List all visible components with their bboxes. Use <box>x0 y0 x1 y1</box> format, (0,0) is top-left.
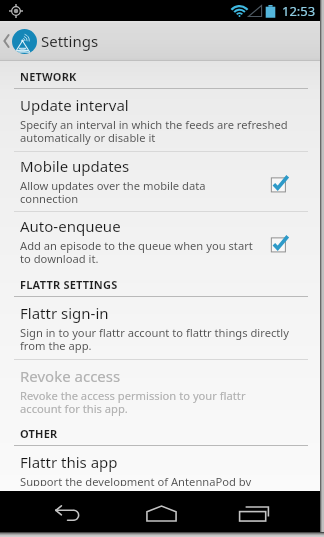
button[interactable]: Toggle setting <box>270 174 290 194</box>
staticText: Sign in to your flattr account to flattr… <box>20 325 289 354</box>
staticText: Flattr this app <box>20 452 118 472</box>
staticText: Add an episode to the queue when you sta… <box>20 238 253 267</box>
button[interactable]: Back <box>39 491 95 532</box>
staticText: Allow updates over the mobile data conne… <box>20 178 206 207</box>
staticText: Auto-enqueue <box>20 216 121 236</box>
staticText: Specify an interval in which the feeds a… <box>20 117 288 146</box>
button[interactable]: Home <box>133 491 189 532</box>
staticText: Revoke access <box>20 366 121 386</box>
staticText: Revoke the access permission to your fla… <box>20 388 246 417</box>
staticText: Support the development of AntennaPod by… <box>20 474 252 486</box>
button[interactable]: Update interval <box>0 89 320 151</box>
staticText: NETWORK <box>20 69 77 84</box>
button[interactable]: Recent apps <box>226 491 282 532</box>
button[interactable]: Mobile updates <box>0 152 320 211</box>
button[interactable]: Navigate up <box>0 21 12 61</box>
staticText: Settings <box>41 31 99 51</box>
button[interactable]: Toggle setting <box>270 234 290 254</box>
button[interactable]: Revoke access <box>0 360 320 422</box>
button[interactable]: Flattr sign-in <box>0 297 320 359</box>
staticText: OTHER <box>20 426 58 441</box>
staticText: 12:53 <box>282 2 316 20</box>
staticText: Update interval <box>20 95 129 115</box>
button[interactable]: Auto-enqueue <box>0 212 320 271</box>
staticText: Flattr sign-in <box>20 303 109 323</box>
button[interactable]: Flattr this app <box>0 446 320 491</box>
staticText: Mobile updates <box>20 156 130 176</box>
staticText: FLATTR SETTINGS <box>20 277 118 292</box>
